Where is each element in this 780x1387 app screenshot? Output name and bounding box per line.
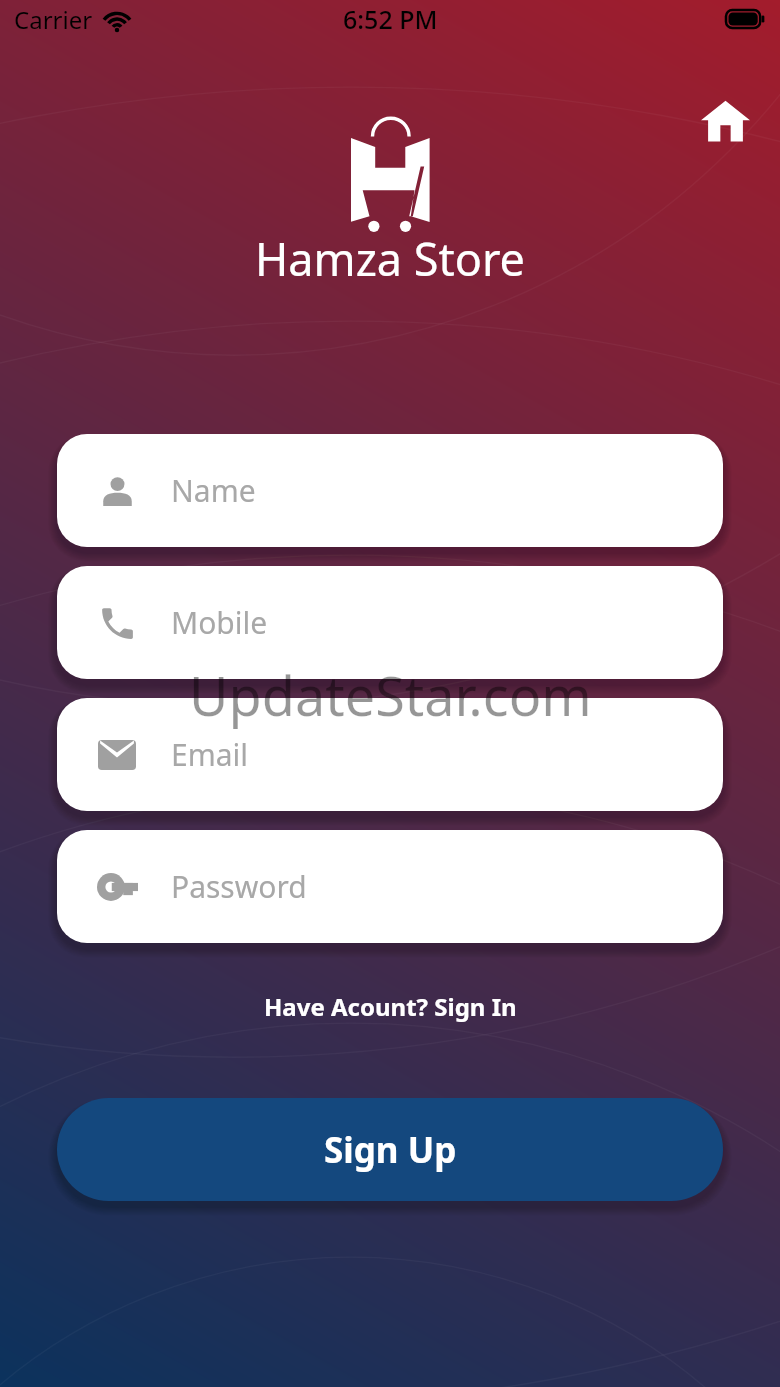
staticText: Hamza Store [255,228,526,289]
button[interactable]: Email [57,698,723,811]
staticText: 6:52 PM [343,2,438,36]
staticText: Sign Up [324,1126,457,1174]
button[interactable]: Have Acount? Sign In [0,983,780,1029]
button[interactable]: Sign Up [57,1098,723,1201]
button[interactable]: Name [57,434,723,547]
staticText: Carrier [14,3,93,36]
staticText: UpdateStar.com [189,658,592,732]
button[interactable]: Home [696,92,754,150]
staticText: Have Acount? Sign In [264,990,517,1023]
staticText: Email [171,734,249,775]
button[interactable]: Password [57,830,723,943]
staticText: Mobile [171,602,268,643]
staticText: Name [171,470,256,511]
staticText: Password [171,866,307,907]
button[interactable]: Mobile [57,566,723,679]
